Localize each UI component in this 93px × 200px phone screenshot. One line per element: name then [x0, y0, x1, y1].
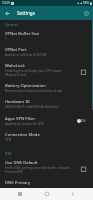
button[interactable]: Connection Mode	[0, 129, 93, 145]
staticText: VPN	[5, 138, 12, 142]
staticText: (Battery Drain)	[5, 73, 27, 77]
button[interactable]: WakeLock	[0, 60, 93, 80]
staticText: Application results for VPN	[5, 122, 44, 126]
button[interactable]: Back	[0, 6, 14, 20]
button[interactable]: VPNet Port	[0, 44, 93, 60]
staticText: 4f2305c4fa71c3dfa73b0d4c0d6a3bc2	[5, 105, 59, 109]
staticText: Use DNS Default	[5, 160, 38, 166]
staticText: General	[5, 22, 18, 27]
staticText: 10:29	[2, 1, 10, 5]
staticText: Prefer DNS settings provided by the netw…	[5, 166, 70, 170]
staticText: Settings	[17, 10, 35, 16]
staticText: DNS Primary	[5, 180, 31, 185]
staticText: Applies to all kinds of SOCKS	[5, 53, 47, 57]
staticText: Hardware ID	[5, 99, 30, 105]
button[interactable]: DNS Primary	[0, 177, 93, 188]
staticText: VPNet Buffer Size	[5, 31, 40, 37]
button[interactable]: Use DNS Default	[79, 163, 88, 172]
button[interactable]: WakeLock	[79, 66, 88, 75]
button[interactable]: Back	[67, 188, 79, 200]
button[interactable]: Apps VPN Filter	[77, 115, 88, 126]
button[interactable]: Recents	[14, 188, 26, 200]
staticText: WakeLock	[5, 63, 25, 69]
staticText: 1	[5, 37, 7, 41]
staticText: Apps VPN Filter	[5, 116, 36, 122]
staticText: DNS	[5, 151, 12, 156]
staticText: Connection Mode	[5, 132, 40, 138]
button[interactable]: Apps VPN Filter	[0, 112, 93, 129]
button[interactable]: Use DNS Default	[0, 157, 93, 177]
staticText: Provider/ISP	[5, 170, 23, 174]
button[interactable]: Battery Optimization	[0, 80, 93, 96]
button[interactable]: Hardware ID	[0, 96, 93, 112]
staticText: Battery Optimization	[5, 83, 46, 89]
button[interactable]: VPNet Buffer Size	[0, 28, 93, 44]
staticText: 95%	[83, 1, 89, 5]
button[interactable]: Home	[41, 188, 53, 200]
staticText: VPNet Port	[5, 47, 27, 53]
staticText: Enabling this will keep your CPU awake	[5, 69, 62, 73]
button[interactable]: Help	[79, 6, 93, 20]
staticText: Remove more battery restriction of app	[5, 89, 63, 93]
